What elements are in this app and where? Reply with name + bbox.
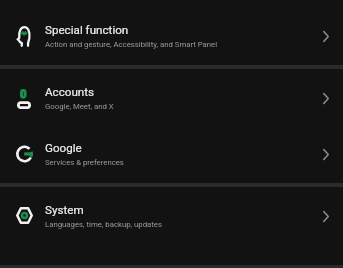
staticText: System	[45, 203, 84, 217]
button[interactable]: Accounts	[0, 70, 343, 126]
other: Open Google	[323, 149, 329, 160]
staticText: Languages, time, backup, updates	[45, 220, 162, 229]
other: Open System	[323, 211, 329, 222]
button[interactable]: Special function	[0, 8, 343, 64]
staticText: Google	[45, 141, 82, 155]
other: Open Accounts	[323, 93, 329, 104]
button[interactable]: System	[0, 188, 343, 244]
staticText: Special function	[45, 23, 129, 37]
other: Open Special function	[323, 31, 329, 42]
button[interactable]: Google	[0, 126, 343, 182]
staticText: Action and gesture, Accessibility, and S…	[45, 40, 218, 49]
staticText: Services & preferences	[45, 158, 124, 167]
staticText: Accounts	[45, 85, 95, 99]
staticText: Google, Meet, and X	[45, 102, 114, 111]
